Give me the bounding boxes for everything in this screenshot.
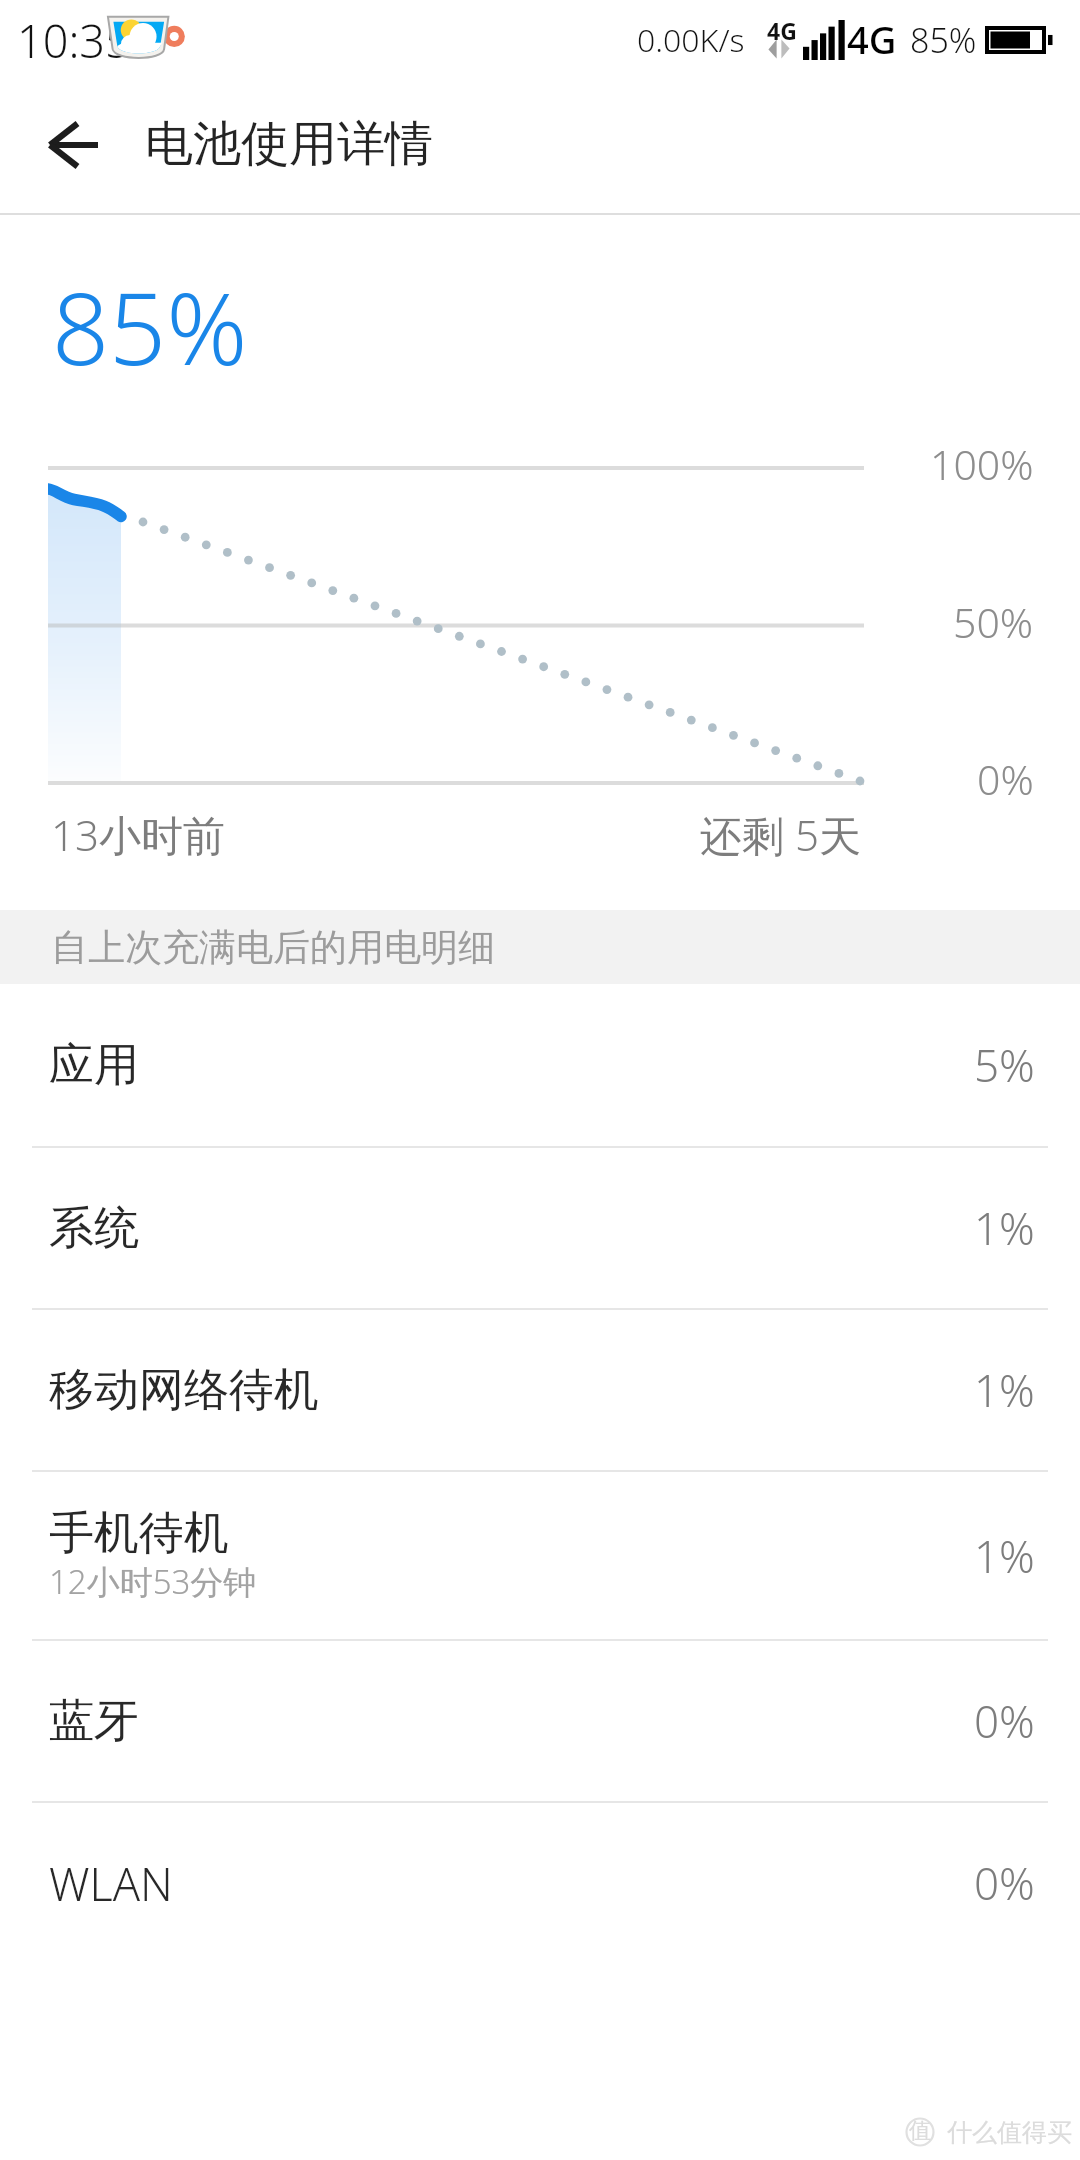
button[interactable]: 应用 [0,984,1080,1146]
staticText: 系统 [49,1200,139,1257]
staticText: 85% [910,17,977,63]
staticText: 0% [974,1691,1035,1751]
staticText: WLAN [49,1853,173,1914]
staticText: 13小时前 [51,806,225,863]
staticText: 12小时53分钟 [49,1559,257,1604]
staticText: 100% [930,436,1034,492]
staticText: 自上次充满电后的用电明细 [51,924,495,971]
button[interactable]: 系统 [0,1148,1080,1308]
button[interactable]: WLAN [0,1803,1080,1963]
staticText: 10:35 [17,10,131,71]
button[interactable]: 蓝牙 [0,1641,1080,1801]
staticText: 0.00K/s [637,18,745,62]
staticText: 电池使用详情 [145,114,433,174]
staticText: 50% [953,594,1034,650]
staticText: 值 [909,2117,931,2145]
staticText: 手机待机 [49,1505,229,1562]
staticText: 5% [974,1035,1035,1095]
staticText: 蓝牙 [49,1693,139,1750]
staticText: 移动网络待机 [49,1362,319,1419]
staticText: 1% [974,1360,1035,1420]
staticText: 还剩 5天 [700,806,861,863]
staticText: 应用 [49,1037,139,1094]
staticText: 什么值得买 [947,2117,1072,2148]
staticText: 85% [52,258,248,394]
button[interactable]: 手机待机 [0,1472,1080,1639]
staticText: 4G [767,15,797,46]
button[interactable]: 移动网络待机 [0,1310,1080,1470]
staticText: 4G [847,13,897,65]
button[interactable]: Back [28,99,120,191]
staticText: 0% [977,751,1034,807]
staticText: 1% [974,1198,1035,1258]
staticText: 1% [974,1526,1035,1586]
staticText: 0% [974,1853,1035,1913]
